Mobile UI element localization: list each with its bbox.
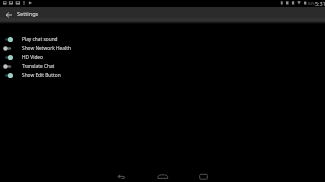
staticText: HD Video bbox=[22, 54, 43, 61]
button[interactable]: Show Edit Button bbox=[0, 71, 325, 80]
button[interactable]: Back bbox=[2, 6, 16, 23]
staticText: Show Edit Button bbox=[22, 72, 61, 79]
staticText: Show Network Health bbox=[22, 45, 71, 52]
button[interactable]: Play chat sound bbox=[0, 35, 325, 44]
staticText: Settings bbox=[17, 10, 39, 18]
button[interactable]: Back bbox=[110, 166, 134, 182]
staticText: 84% bbox=[308, 1, 315, 6]
staticText: 5:31 bbox=[315, 0, 325, 7]
staticText: Play chat sound bbox=[22, 36, 58, 43]
button[interactable]: Recent apps bbox=[192, 166, 216, 182]
staticText: Translate Chat bbox=[22, 63, 55, 70]
button[interactable]: HD Video bbox=[0, 53, 325, 62]
button[interactable]: Home bbox=[151, 166, 175, 182]
button[interactable]: Translate Chat bbox=[0, 62, 325, 71]
button[interactable]: Show Network Health bbox=[0, 44, 325, 53]
